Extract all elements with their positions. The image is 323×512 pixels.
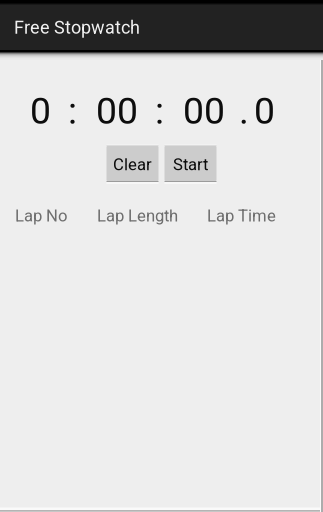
staticText: Lap Length [97, 206, 178, 225]
staticText: 0 [254, 89, 275, 133]
staticText: Start [173, 155, 208, 174]
button[interactable]: Clear [106, 144, 158, 184]
staticText: . [239, 89, 249, 133]
staticText: 0 [30, 89, 51, 133]
staticText: Clear [113, 155, 152, 174]
staticText: Lap No [15, 206, 68, 225]
staticText: 00 [96, 89, 138, 133]
staticText: : [68, 89, 77, 133]
staticText: 00 [183, 89, 225, 133]
staticText: : [155, 89, 164, 133]
button[interactable]: Start [164, 144, 216, 184]
staticText: Free Stopwatch [14, 17, 140, 38]
staticText: Lap Time [207, 206, 276, 225]
